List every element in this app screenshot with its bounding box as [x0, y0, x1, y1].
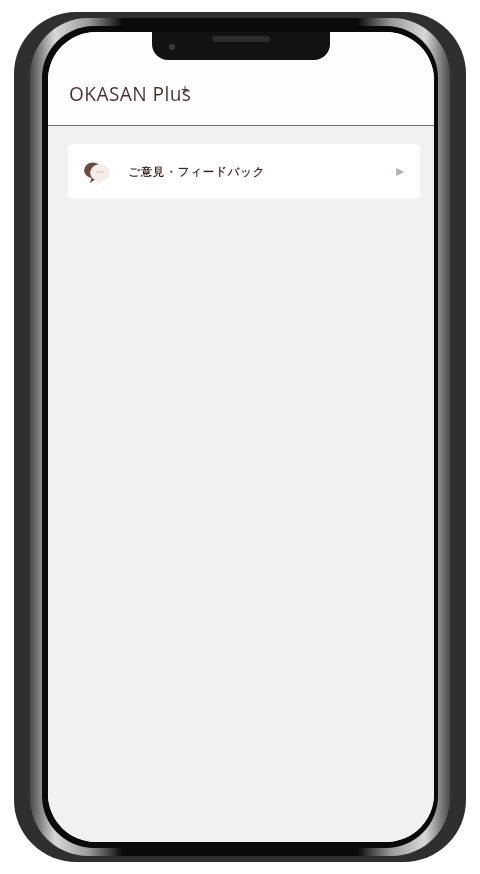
staticText: ご意見・フィードバック: [128, 165, 266, 179]
button[interactable]: Feedback: [68, 144, 420, 199]
staticText: +: [181, 80, 190, 99]
other: Feedback: [82, 157, 112, 187]
staticText: OKASAN Plus: [69, 81, 192, 107]
